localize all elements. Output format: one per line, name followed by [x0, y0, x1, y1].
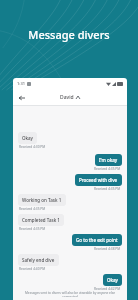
staticText: Message divers [0, 27, 138, 42]
staticText: 1:31 [17, 81, 25, 86]
staticText: Completed Task 1 [22, 217, 60, 223]
button[interactable]: Working on Task 1 [18, 194, 66, 206]
staticText: Okay [22, 135, 33, 141]
staticText: Proceed with dive [79, 177, 118, 183]
staticText: Received 4:38 PM [94, 247, 121, 251]
button[interactable]: Okay [103, 274, 122, 286]
staticText: Received 4:35 PM [94, 187, 121, 191]
staticText: I'm okay [99, 157, 118, 163]
staticText: Received 4:35 PM [94, 167, 121, 171]
staticText: Go to the exit point [76, 237, 118, 243]
staticText: Safely end dive [22, 257, 55, 263]
staticText: Working on Task 1 [22, 197, 62, 203]
button[interactable]: I'm okay [95, 154, 122, 166]
button[interactable]: Completed Task 1 [18, 214, 64, 226]
button[interactable]: David [58, 92, 82, 103]
staticText: Received 4:35 PM [19, 207, 46, 211]
button[interactable]: Okay [18, 132, 37, 144]
button[interactable]: Safely end dive [18, 254, 59, 266]
staticText: Okay [107, 277, 118, 283]
staticText: Received 4:30 PM [19, 145, 46, 149]
staticText: Received 4:40 PM [19, 267, 46, 271]
button[interactable]: Go to the exit point [72, 234, 122, 246]
staticText: David [60, 94, 74, 101]
button[interactable]: Back [16, 92, 27, 103]
button[interactable]: Proceed with dive [75, 174, 122, 186]
staticText: Received 4:35 PM [19, 227, 46, 231]
staticText: Messages sent to divers will also be vie… [18, 291, 122, 297]
staticText: Received 4:42 PM [94, 287, 121, 291]
